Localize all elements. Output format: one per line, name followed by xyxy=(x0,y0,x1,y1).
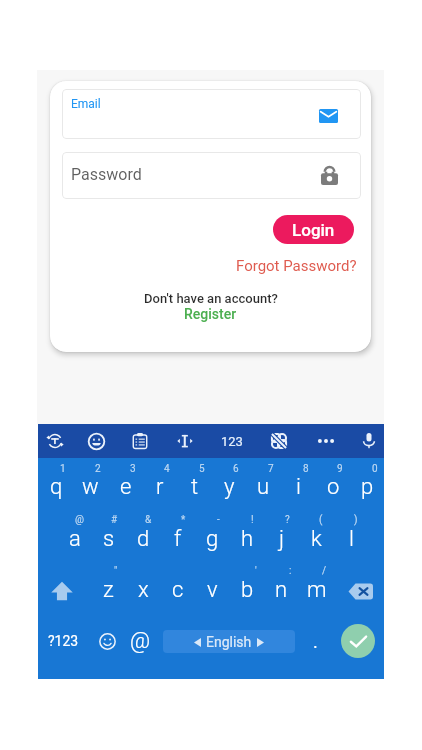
staticText: / xyxy=(322,565,327,577)
button[interactable]: j xyxy=(264,514,299,564)
button[interactable]: Email xyxy=(62,89,361,139)
button[interactable]: w xyxy=(73,462,108,512)
button[interactable]: Voice input xyxy=(352,424,386,458)
staticText: d xyxy=(137,526,150,552)
staticText: o xyxy=(327,474,340,500)
button[interactable]: English xyxy=(163,630,295,653)
button[interactable]: a xyxy=(57,514,92,564)
staticText: m xyxy=(307,577,327,603)
button[interactable]: Emoji xyxy=(79,424,113,458)
staticText: Password xyxy=(71,165,142,184)
staticText: ) xyxy=(354,514,358,526)
staticText: @ xyxy=(130,628,151,654)
staticText: @ xyxy=(75,514,84,526)
staticText: 6 xyxy=(233,463,239,475)
staticText: Register xyxy=(184,306,237,322)
button[interactable]: y xyxy=(212,462,247,512)
button[interactable]: Enter xyxy=(341,624,375,658)
staticText: ( xyxy=(319,514,323,526)
button[interactable]: ?123 xyxy=(41,619,85,663)
button[interactable]: k xyxy=(299,514,334,564)
staticText: 0 xyxy=(372,463,378,475)
button[interactable]: Backspace xyxy=(338,569,382,613)
button[interactable]: p xyxy=(350,462,385,512)
button[interactable]: f xyxy=(160,514,195,564)
staticText: Email xyxy=(71,97,101,111)
staticText: n xyxy=(275,577,288,603)
button[interactable]: Numbers xyxy=(215,424,249,458)
staticText: a xyxy=(69,526,81,552)
button[interactable]: e xyxy=(108,462,143,512)
staticText: l xyxy=(349,526,354,552)
button[interactable]: g xyxy=(195,514,230,564)
button[interactable]: Login xyxy=(273,215,354,244)
button[interactable]: b xyxy=(230,565,265,615)
staticText: i xyxy=(296,474,301,500)
button[interactable]: o xyxy=(316,462,351,512)
staticText: English xyxy=(206,634,252,650)
staticText: s xyxy=(103,526,115,552)
staticText: " xyxy=(114,565,118,577)
staticText: # xyxy=(111,514,118,526)
staticText: 1 xyxy=(60,463,66,475)
staticText: ? xyxy=(285,514,290,526)
staticText: b xyxy=(241,577,254,603)
button[interactable]: z xyxy=(91,565,126,615)
button[interactable]: r xyxy=(142,462,177,512)
button[interactable]: u xyxy=(246,462,281,512)
button[interactable]: . xyxy=(301,627,329,655)
button[interactable]: s xyxy=(91,514,126,564)
staticText: 4 xyxy=(164,463,170,475)
staticText: j xyxy=(279,526,285,552)
button[interactable]: Shift xyxy=(40,569,84,613)
staticText: g xyxy=(206,526,219,552)
staticText: 3 xyxy=(130,463,136,475)
button[interactable]: q xyxy=(39,462,74,512)
staticText: 9 xyxy=(337,463,343,475)
button[interactable]: n xyxy=(264,565,299,615)
button[interactable]: m xyxy=(299,565,334,615)
button[interactable]: @ xyxy=(123,624,157,658)
staticText: x xyxy=(138,577,149,603)
button[interactable]: x xyxy=(126,565,161,615)
button[interactable]: Text edit xyxy=(168,424,202,458)
staticText: f xyxy=(174,526,182,552)
staticText: ! xyxy=(251,514,254,526)
button[interactable]: i xyxy=(281,462,316,512)
button[interactable]: c xyxy=(160,565,195,615)
button[interactable]: More xyxy=(309,424,343,458)
staticText: y xyxy=(224,474,235,500)
staticText: ' xyxy=(255,565,257,577)
button[interactable]: Clipboard xyxy=(123,424,157,458)
staticText: * xyxy=(181,514,186,526)
staticText: 123 xyxy=(221,434,243,449)
button[interactable]: h xyxy=(230,514,265,564)
staticText: v xyxy=(207,577,218,603)
button[interactable]: Handwriting off xyxy=(262,424,296,458)
button[interactable]: v xyxy=(195,565,230,615)
staticText: h xyxy=(241,526,254,552)
staticText: 2 xyxy=(95,463,101,475)
button[interactable]: l xyxy=(334,514,369,564)
staticText: p xyxy=(361,474,374,500)
button[interactable]: Translate xyxy=(38,424,72,458)
staticText: z xyxy=(103,577,114,603)
button[interactable]: d xyxy=(126,514,161,564)
button[interactable]: Emoji xyxy=(90,624,124,658)
staticText: t xyxy=(191,474,199,500)
button[interactable]: Password xyxy=(62,152,361,199)
staticText: Don't have an account? xyxy=(144,291,278,306)
button[interactable]: t xyxy=(177,462,212,512)
staticText: q xyxy=(50,474,63,500)
staticText: - xyxy=(217,514,220,526)
staticText: . xyxy=(313,631,318,652)
staticText: ?123 xyxy=(48,633,79,649)
button[interactable]: Register xyxy=(184,306,237,322)
staticText: & xyxy=(145,514,152,526)
staticText: w xyxy=(82,474,99,500)
button[interactable]: Forgot Password? xyxy=(236,257,357,275)
staticText: e xyxy=(120,474,132,500)
staticText: u xyxy=(257,474,270,500)
staticText: Forgot Password? xyxy=(236,257,357,275)
staticText: Login xyxy=(292,220,335,240)
